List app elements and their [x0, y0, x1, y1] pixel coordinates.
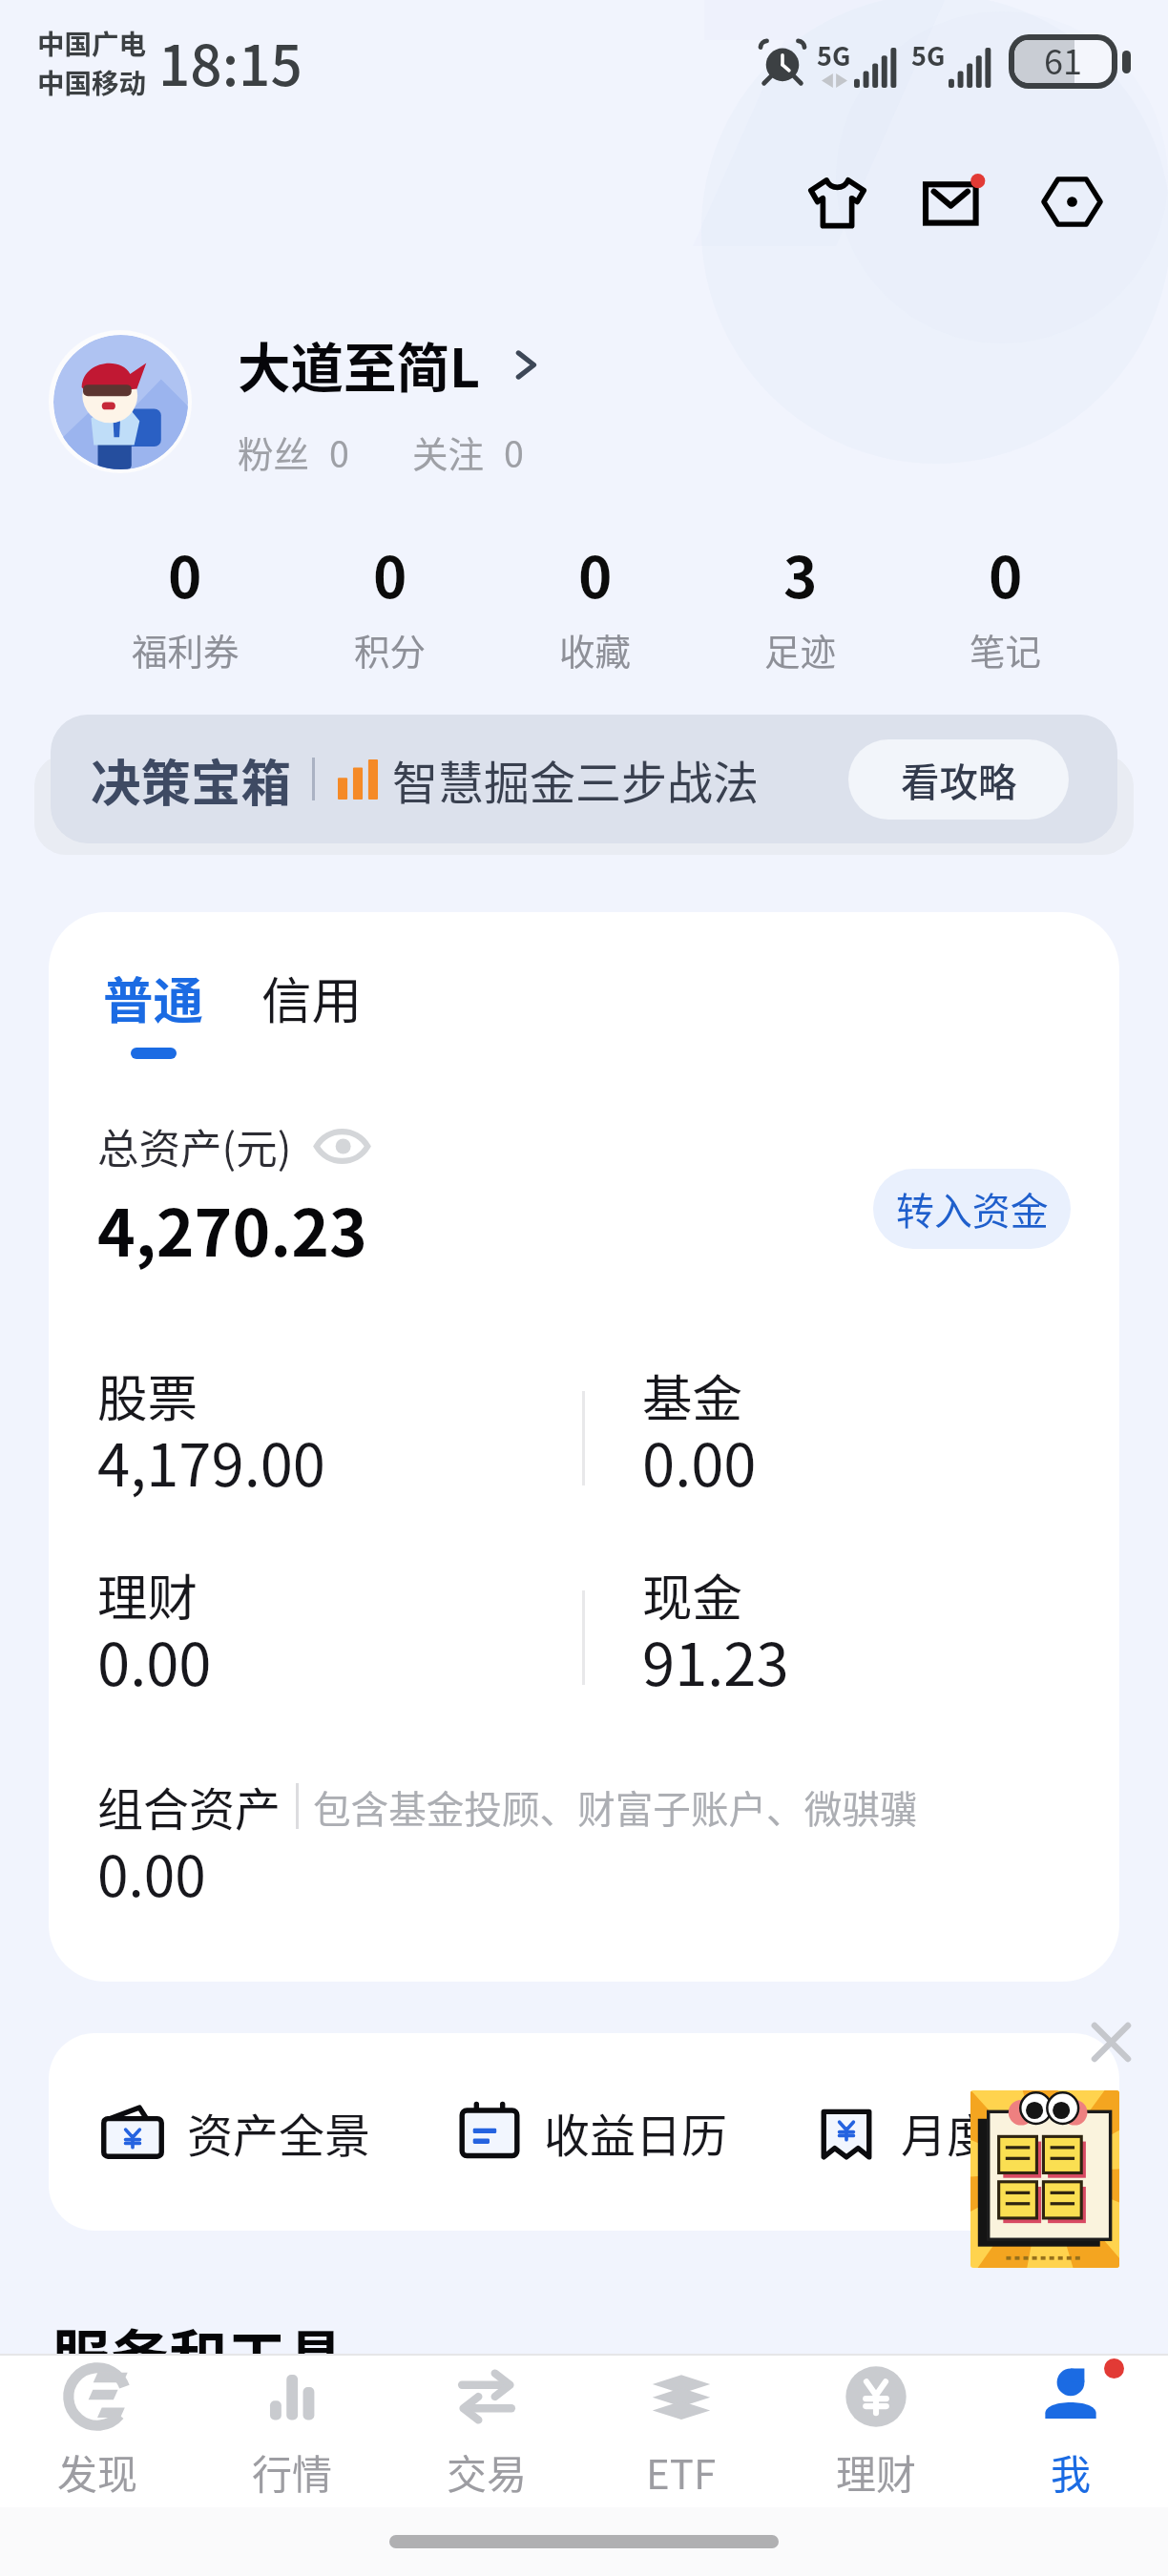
button[interactable]: 0 — [287, 531, 492, 675]
staticText: 收藏 — [559, 623, 631, 675]
button[interactable]: 股票 — [97, 1364, 582, 1512]
staticText: 理财 — [97, 1558, 198, 1621]
staticText: 足迹 — [764, 623, 836, 675]
staticText: 大道至简L — [238, 326, 481, 403]
staticText: 理财 — [836, 2442, 917, 2501]
staticText: 笔记 — [970, 623, 1041, 675]
staticText: 0 — [168, 531, 202, 614]
button[interactable]: 我 — [973, 2356, 1168, 2507]
staticText: 91.23 — [642, 1618, 789, 1703]
staticText: 粉丝 — [238, 426, 309, 477]
staticText: 决策宝箱 — [91, 743, 292, 816]
staticText: 发现 — [57, 2442, 138, 2501]
button[interactable]: 信用 — [256, 958, 368, 1036]
staticText: 组合资产 — [97, 1773, 282, 1839]
button[interactable]: Profile avatar — [49, 330, 192, 473]
staticText: 5G — [911, 36, 946, 73]
button[interactable]: 转入资金 — [873, 1169, 1071, 1249]
button[interactable]: 发现 — [0, 2356, 195, 2507]
staticText: 信用 — [261, 961, 363, 1033]
button[interactable]: 0 — [903, 531, 1108, 675]
button[interactable]: Theme — [779, 143, 896, 260]
staticText: 0.00 — [97, 1618, 212, 1703]
staticText: 月度账单 — [901, 2099, 1085, 2166]
button[interactable]: 现金 — [585, 1564, 1071, 1712]
button[interactable]: 行情 — [195, 2356, 389, 2507]
staticText: 关注 — [412, 426, 484, 477]
staticText: 收益日历 — [544, 2099, 728, 2166]
staticText: 中国广电 — [37, 23, 147, 62]
staticText: 4,179.00 — [97, 1419, 325, 1504]
staticText: ETF — [646, 2442, 717, 2501]
staticText: 中国移动 — [37, 62, 147, 101]
button[interactable]: Promotion — [970, 2090, 1119, 2268]
button[interactable]: 决策宝箱 — [51, 715, 1117, 843]
button[interactable]: 资产全景 — [49, 2033, 406, 2231]
staticText: 0 — [504, 426, 524, 477]
staticText: 看攻略 — [901, 752, 1017, 808]
staticText: 行情 — [252, 2442, 333, 2501]
button[interactable]: 看攻略 — [848, 739, 1069, 820]
staticText: 0.00 — [97, 1832, 206, 1913]
staticText: 61 — [1044, 34, 1082, 84]
staticText: 0 — [329, 426, 349, 477]
button[interactable]: 理财 — [779, 2356, 973, 2507]
staticText: 基金 — [642, 1359, 743, 1422]
staticText: 0 — [373, 531, 407, 614]
staticText: 我 — [1051, 2442, 1092, 2501]
staticText: 0 — [989, 531, 1023, 614]
staticText: 资产全景 — [187, 2099, 371, 2166]
staticText: 股票 — [97, 1359, 198, 1422]
staticText: 积分 — [354, 623, 426, 675]
staticText: 总资产(元) — [97, 1116, 292, 1176]
button[interactable]: 交易 — [389, 2356, 584, 2507]
staticText: 交易 — [447, 2442, 528, 2501]
button[interactable]: 月度账单 — [762, 2033, 1119, 2231]
button[interactable]: 大道至简L — [238, 326, 547, 403]
staticText: 0 — [578, 531, 613, 614]
staticText: 4,270.23 — [97, 1182, 367, 1276]
staticText: 智慧掘金三步战法 — [392, 746, 760, 813]
staticText: 转入资金 — [896, 1181, 1049, 1236]
button[interactable]: Messages — [896, 143, 1013, 260]
staticText: 普通 — [103, 961, 204, 1033]
button[interactable]: ETF — [584, 2356, 779, 2507]
staticText: 5G — [817, 36, 851, 73]
staticText: 0.00 — [642, 1419, 757, 1504]
staticText: 包含基金投顾、财富子账户、微骐骥 — [313, 1779, 918, 1834]
button[interactable]: Settings — [1013, 143, 1131, 260]
button[interactable]: 普通 — [97, 958, 210, 1062]
button[interactable]: 收益日历 — [406, 2033, 762, 2231]
staticText: 服务和工具 — [52, 2311, 345, 2396]
button[interactable]: Close — [1074, 2005, 1148, 2079]
staticText: 18:15 — [158, 21, 302, 102]
button[interactable]: 0 — [83, 531, 287, 675]
staticText: 现金 — [642, 1558, 743, 1621]
staticText: 福利券 — [132, 623, 240, 675]
button[interactable]: 0 — [492, 531, 698, 675]
button[interactable]: 基金 — [585, 1364, 1071, 1512]
button[interactable]: 3 — [698, 531, 903, 675]
button[interactable]: 理财 — [97, 1564, 582, 1712]
staticText: 3 — [783, 531, 818, 614]
